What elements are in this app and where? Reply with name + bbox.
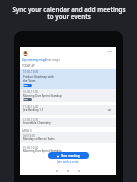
staticText: 10:30-11:00 xyxy=(23,90,39,94)
button[interactable]: 9:00-9:30 xyxy=(20,132,116,143)
button[interactable]: APRIL 3 xyxy=(22,129,32,133)
staticText: 10:00-10:30 xyxy=(23,146,39,150)
button[interactable]: Account xyxy=(23,51,28,56)
staticText: 11:00-11:30 xyxy=(23,105,39,109)
button[interactable]: 11:00-11:30 xyxy=(20,105,116,115)
button[interactable]: New meeting xyxy=(48,152,89,159)
button[interactable]: Video call xyxy=(108,108,112,112)
staticText: Product Roadmap with the Team xyxy=(23,75,54,83)
staticText: New meeting xyxy=(61,154,80,158)
button[interactable]: 12:00-12:30 xyxy=(20,118,116,127)
button[interactable]: 10:00-10:30 xyxy=(20,145,116,158)
staticText: Incredible Chemistry xyxy=(23,121,51,125)
staticText: 12:00-12:30 xyxy=(23,118,39,122)
button[interactable]: Upcoming mtgs xyxy=(22,58,47,62)
button[interactable]: TODAY, AP xyxy=(22,64,35,68)
staticText: Monday coffee w/ Sales xyxy=(23,137,55,141)
staticText: Morning Dive Sprint Standup xyxy=(23,149,62,153)
button[interactable]: 10:30-11:00 xyxy=(20,89,116,102)
staticText: Past mtgs xyxy=(45,58,60,62)
staticText: 9:00-9:30 xyxy=(23,134,35,138)
button[interactable]: 10:00-10:30 xyxy=(20,69,116,89)
staticText: TODAY, AP xyxy=(22,64,35,68)
staticText: Morning Dive Sprint Standup xyxy=(23,94,62,98)
button[interactable]: JOIN NOW xyxy=(23,98,32,101)
staticText: JOIN NOW xyxy=(23,84,32,87)
staticText: Join with a code xyxy=(57,160,79,164)
button[interactable]: Join with a code xyxy=(57,160,79,164)
button[interactable]: More options xyxy=(106,48,113,55)
staticText: Jira Backlog 1:1 xyxy=(23,108,44,112)
staticText: Upcoming mtgs xyxy=(22,58,47,62)
staticText: JOIN NOW xyxy=(23,98,32,101)
staticText: Sync your calendar and add meetings to y… xyxy=(12,5,126,21)
staticText: APRIL 3 xyxy=(22,129,32,133)
button[interactable]: JOIN NOW xyxy=(23,84,32,87)
staticText: 10:00-10:30 xyxy=(23,70,39,74)
button[interactable]: Past mtgs xyxy=(45,58,60,62)
